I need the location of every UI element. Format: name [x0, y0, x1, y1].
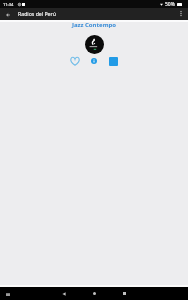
staticText: 11:34	[3, 2, 14, 7]
staticText: Radios del Perú	[18, 10, 56, 17]
button[interactable]: Back	[2, 9, 13, 20]
button[interactable]: Screenshot	[5, 291, 11, 297]
staticText: 50%	[165, 1, 175, 8]
staticText: Jazz Contempo	[0, 21, 188, 29]
button[interactable]: Recents	[117, 287, 131, 300]
button[interactable]: Home	[87, 287, 101, 300]
button[interactable]: More options	[175, 9, 185, 19]
button[interactable]: Information	[89, 56, 99, 66]
button[interactable]: Back	[57, 287, 71, 300]
button[interactable]: Favorite	[70, 56, 80, 66]
button[interactable]: Stop	[108, 56, 118, 66]
